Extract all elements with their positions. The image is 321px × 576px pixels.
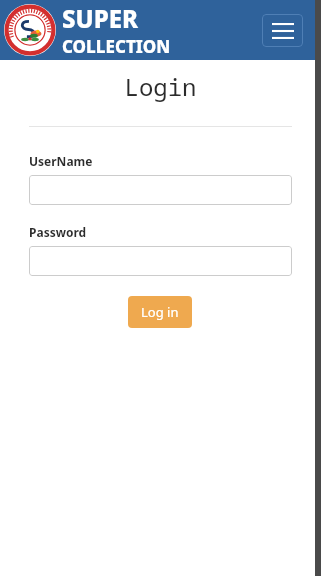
- button[interactable]: Log in: [128, 296, 192, 328]
- button[interactable]: [29, 246, 292, 276]
- staticText: SUPER: [62, 2, 138, 35]
- button[interactable]: [29, 175, 292, 205]
- staticText: COLLECTION: [62, 35, 171, 58]
- staticText: Password: [29, 224, 87, 240]
- button[interactable]: [4, 4, 56, 56]
- staticText: Log in: [141, 303, 179, 321]
- staticText: Login: [0, 70, 321, 103]
- button[interactable]: Open menu: [262, 14, 303, 47]
- staticText: UserName: [29, 153, 93, 169]
